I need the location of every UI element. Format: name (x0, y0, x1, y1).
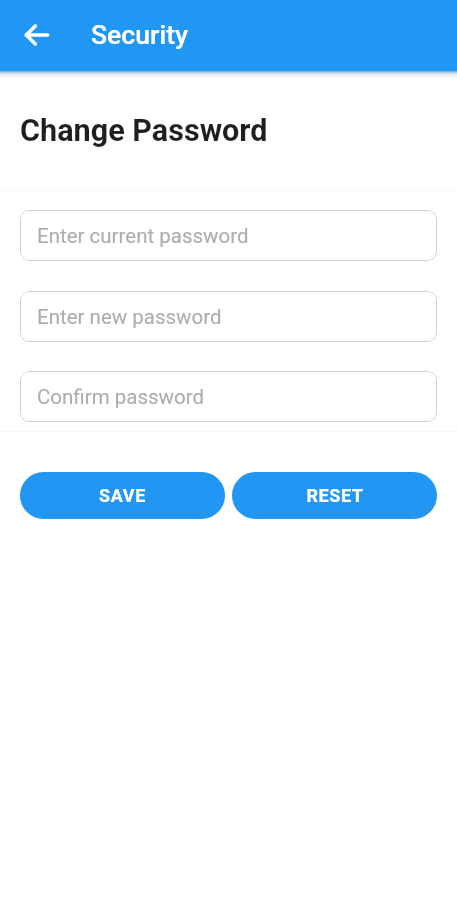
staticText: Security (91, 19, 189, 50)
staticText: RESET (306, 485, 364, 506)
staticText: Enter new password (37, 305, 222, 329)
button[interactable]: Enter current password (20, 210, 437, 261)
staticText: SAVE (99, 485, 146, 506)
staticText: Change Password (20, 113, 268, 149)
button[interactable]: Confirm password (20, 371, 437, 422)
staticText: Confirm password (37, 385, 204, 409)
button[interactable]: Back (15, 13, 59, 57)
button[interactable]: Enter new password (20, 291, 437, 342)
button[interactable]: RESET (232, 472, 437, 519)
staticText: Enter current password (37, 224, 249, 248)
button[interactable]: SAVE (20, 472, 225, 519)
